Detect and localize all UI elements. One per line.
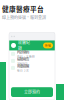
staticText: 內科・王醫師 — [17, 54, 35, 58]
button[interactable]: 立即預約 — [11, 87, 53, 97]
staticText: 2024/03/12 — [17, 61, 27, 65]
button[interactable]: 門診預約 — [9, 50, 55, 57]
staticText: 檢驗報告 — [17, 57, 29, 61]
staticText: 每日 2 次 — [17, 68, 29, 72]
button[interactable]: 用藥提醒 — [9, 64, 55, 71]
staticText: 用藥提醒 — [17, 64, 29, 68]
staticText: 線上預約掛號・報到查詢 — [2, 15, 46, 20]
staticText: 健康醫療平台 — [2, 4, 44, 14]
staticText: 掛號 — [45, 43, 51, 47]
staticText: 門診預約 — [17, 50, 29, 54]
button[interactable]: 檢驗報告 — [9, 57, 55, 64]
staticText: 立即預約 — [24, 89, 40, 95]
staticText: 就醫紀錄 — [18, 40, 30, 51]
